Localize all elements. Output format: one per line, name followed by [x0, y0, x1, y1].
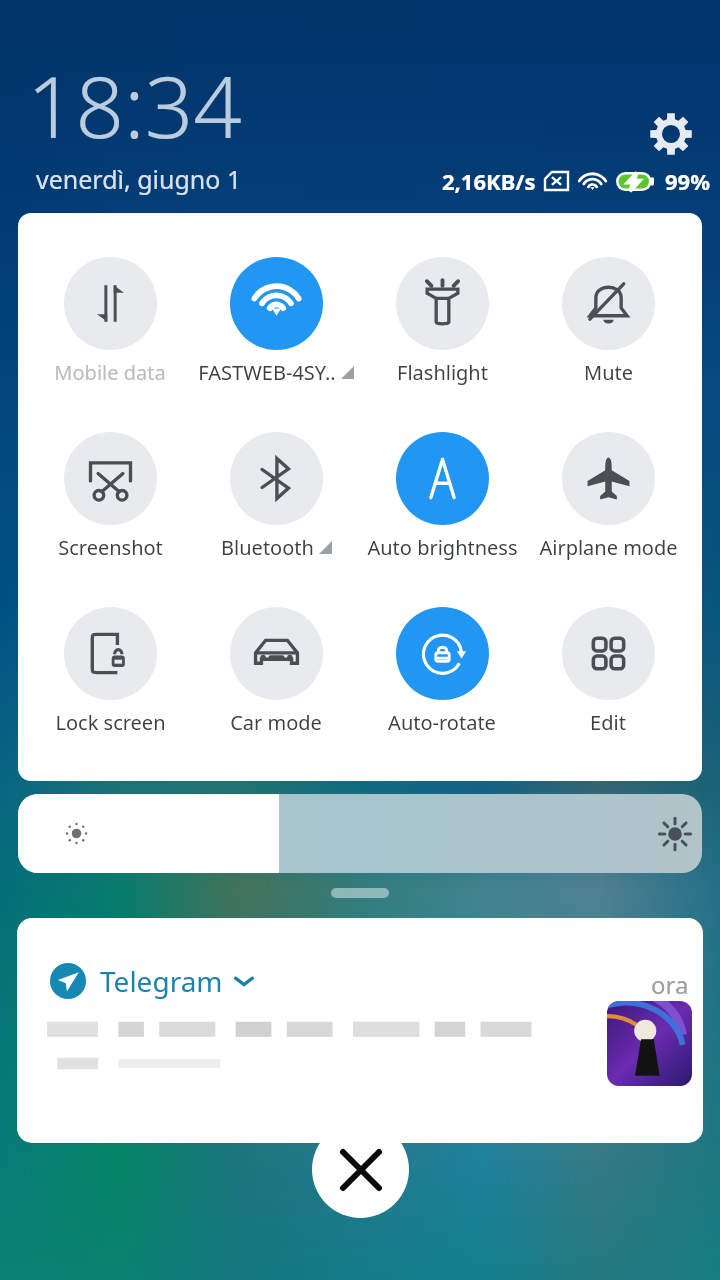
button[interactable]: Auto-rotate [359, 607, 525, 736]
staticText: 2,16KB/s [442, 166, 536, 196]
staticText: Mobile data [54, 359, 166, 386]
staticText: Edit [590, 709, 626, 736]
button[interactable]: Close [312, 1121, 409, 1218]
staticText: Auto-rotate [388, 709, 496, 736]
button[interactable]: Airplane mode [525, 432, 691, 561]
staticText: ora [651, 968, 689, 1001]
button[interactable]: Settings [647, 110, 695, 158]
button[interactable]: Flashlight [359, 257, 525, 386]
button[interactable]: Telegram [17, 918, 703, 1143]
staticText: Flashlight [397, 359, 488, 386]
staticText: FASTWEB-4SY.. [198, 359, 336, 386]
staticText: Mute [584, 359, 633, 386]
staticText: 99% [665, 166, 711, 196]
staticText: Telegram [100, 962, 223, 1000]
staticText: 18:34 [27, 47, 242, 163]
staticText: Car mode [230, 709, 322, 736]
button[interactable]: Auto brightness [359, 432, 525, 561]
button[interactable]: FASTWEB-4SY.. [193, 257, 359, 386]
staticText: Airplane mode [539, 534, 678, 561]
button[interactable] [18, 794, 702, 873]
button[interactable]: Car mode [193, 607, 359, 736]
button[interactable]: Edit [525, 607, 691, 736]
button[interactable]: Mobile data [27, 257, 193, 386]
button[interactable]: Bluetooth [193, 432, 359, 561]
staticText: Auto brightness [367, 534, 518, 561]
button[interactable]: Lock screen [27, 607, 193, 736]
staticText: Lock screen [55, 709, 166, 736]
staticText: Bluetooth [221, 534, 314, 561]
staticText: venerdì, giugno 1 [36, 162, 242, 196]
button[interactable]: Mute [525, 257, 691, 386]
button[interactable]: Screenshot [27, 432, 193, 561]
staticText: Screenshot [58, 534, 163, 561]
